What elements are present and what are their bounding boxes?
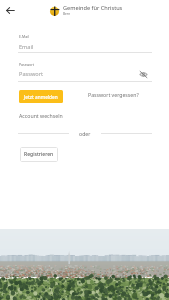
staticText: Registrieren bbox=[24, 151, 54, 158]
staticText: oder bbox=[79, 130, 91, 137]
staticText: Bern bbox=[63, 12, 71, 16]
staticText: Account wechseln bbox=[19, 112, 63, 119]
staticText: Gemeinde für Christus bbox=[63, 4, 123, 12]
button[interactable]: Back bbox=[0, 0, 20, 20]
staticText: E-Mail bbox=[19, 34, 30, 39]
button[interactable]: Registrieren bbox=[20, 147, 58, 162]
button[interactable]: Show password bbox=[136, 68, 150, 81]
button[interactable]: Jetzt anmelden bbox=[19, 90, 63, 103]
button[interactable]: Passwort vergessen? bbox=[88, 88, 143, 101]
staticText: Passwort bbox=[19, 62, 35, 67]
button[interactable]: Account wechseln bbox=[19, 111, 69, 120]
staticText: Jetzt anmelden bbox=[24, 94, 58, 100]
staticText: Passwort vergessen? bbox=[88, 91, 139, 98]
staticText: Email bbox=[19, 43, 34, 51]
staticText: Passwort bbox=[19, 70, 43, 78]
